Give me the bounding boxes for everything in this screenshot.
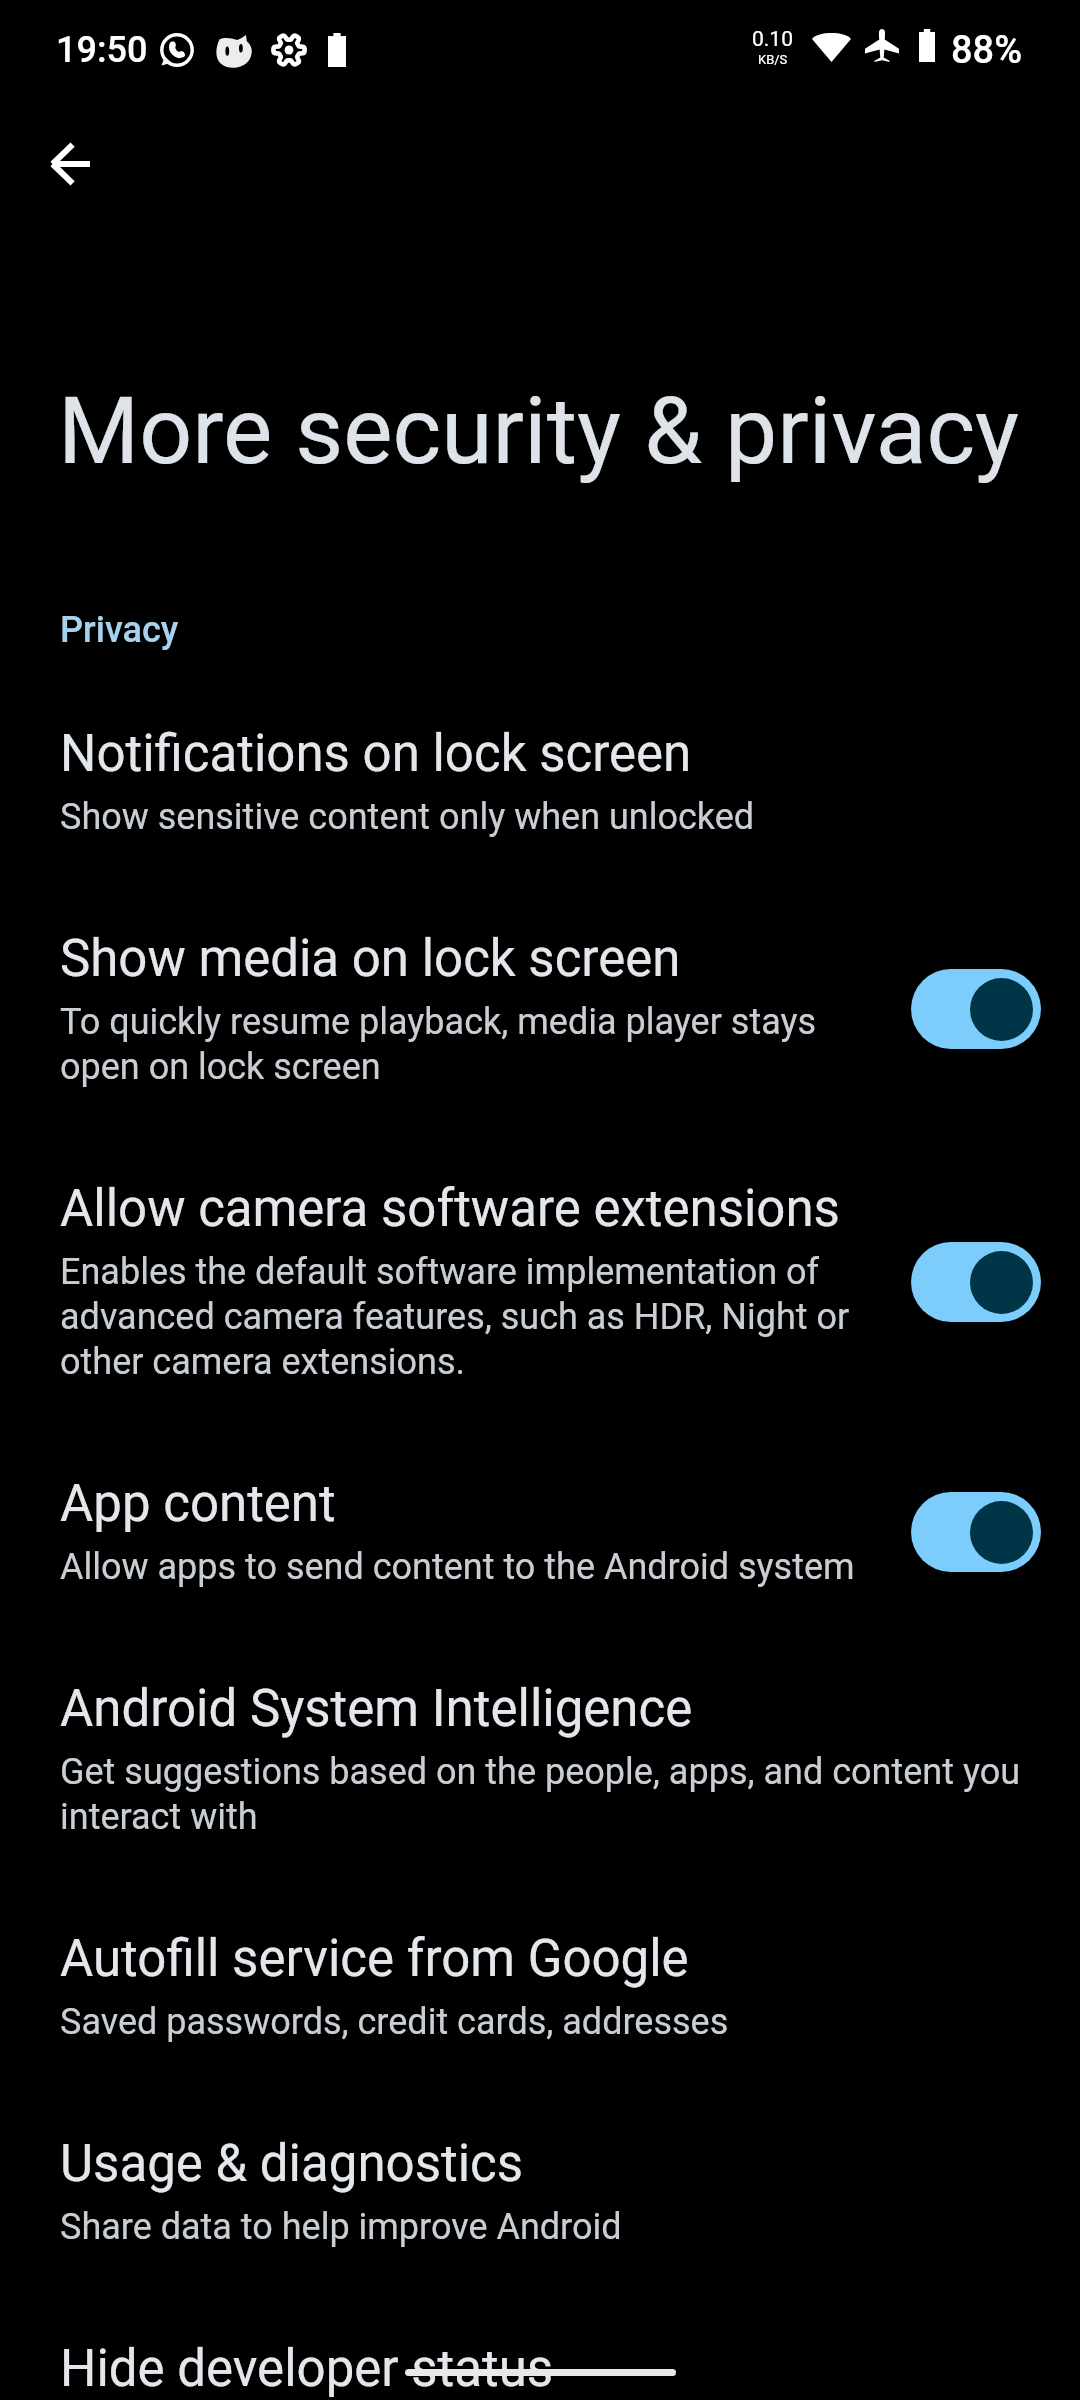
- button[interactable]: Show media on lock screen: [0, 884, 1080, 1134]
- staticText: App content: [60, 1474, 336, 1534]
- button[interactable]: App content: [0, 1429, 1080, 1634]
- staticText: Show sensitive content only when unlocke…: [60, 794, 755, 839]
- staticText: Privacy: [60, 609, 179, 651]
- staticText: Allow camera software extensions: [60, 1179, 840, 1239]
- staticText: 19:50: [56, 29, 148, 71]
- button[interactable]: Toggle: [911, 1492, 1041, 1572]
- staticText: More security & privacy: [58, 377, 1020, 486]
- button[interactable]: Android System Intelligence: [0, 1634, 1080, 1884]
- staticText: Share data to help improve Android: [60, 2204, 622, 2249]
- button[interactable]: Allow camera software extensions: [0, 1134, 1080, 1429]
- staticText: Allow apps to send content to the Androi…: [60, 1544, 855, 1589]
- staticText: Get suggestions based on the people, app…: [60, 1749, 1041, 1839]
- staticText: 0.10: [752, 27, 793, 52]
- button[interactable]: Autofill service from Google: [0, 1884, 1080, 2089]
- staticText: Enables the default software implementat…: [60, 1249, 897, 1384]
- staticText: Hide developer status: [60, 2339, 554, 2399]
- button[interactable]: Back: [22, 116, 118, 212]
- staticText: Saved passwords, credit cards, addresses: [60, 1999, 729, 2044]
- button[interactable]: Toggle: [911, 969, 1041, 1049]
- staticText: Usage & diagnostics: [60, 2134, 524, 2194]
- staticText: 88%: [951, 28, 1023, 73]
- button[interactable]: Notifications on lock screen: [0, 679, 1080, 884]
- staticText: Autofill service from Google: [60, 1929, 689, 1989]
- staticText: Show media on lock screen: [60, 929, 681, 989]
- staticText: To quickly resume playback, media player…: [60, 999, 897, 1089]
- button[interactable]: Toggle: [911, 1242, 1041, 1322]
- button[interactable]: Usage & diagnostics: [0, 2089, 1080, 2294]
- staticText: Notifications on lock screen: [60, 724, 692, 784]
- staticText: Android System Intelligence: [60, 1679, 693, 1739]
- staticText: KB/S: [758, 52, 788, 67]
- button[interactable]: Hide developer status: [0, 2294, 1080, 2400]
